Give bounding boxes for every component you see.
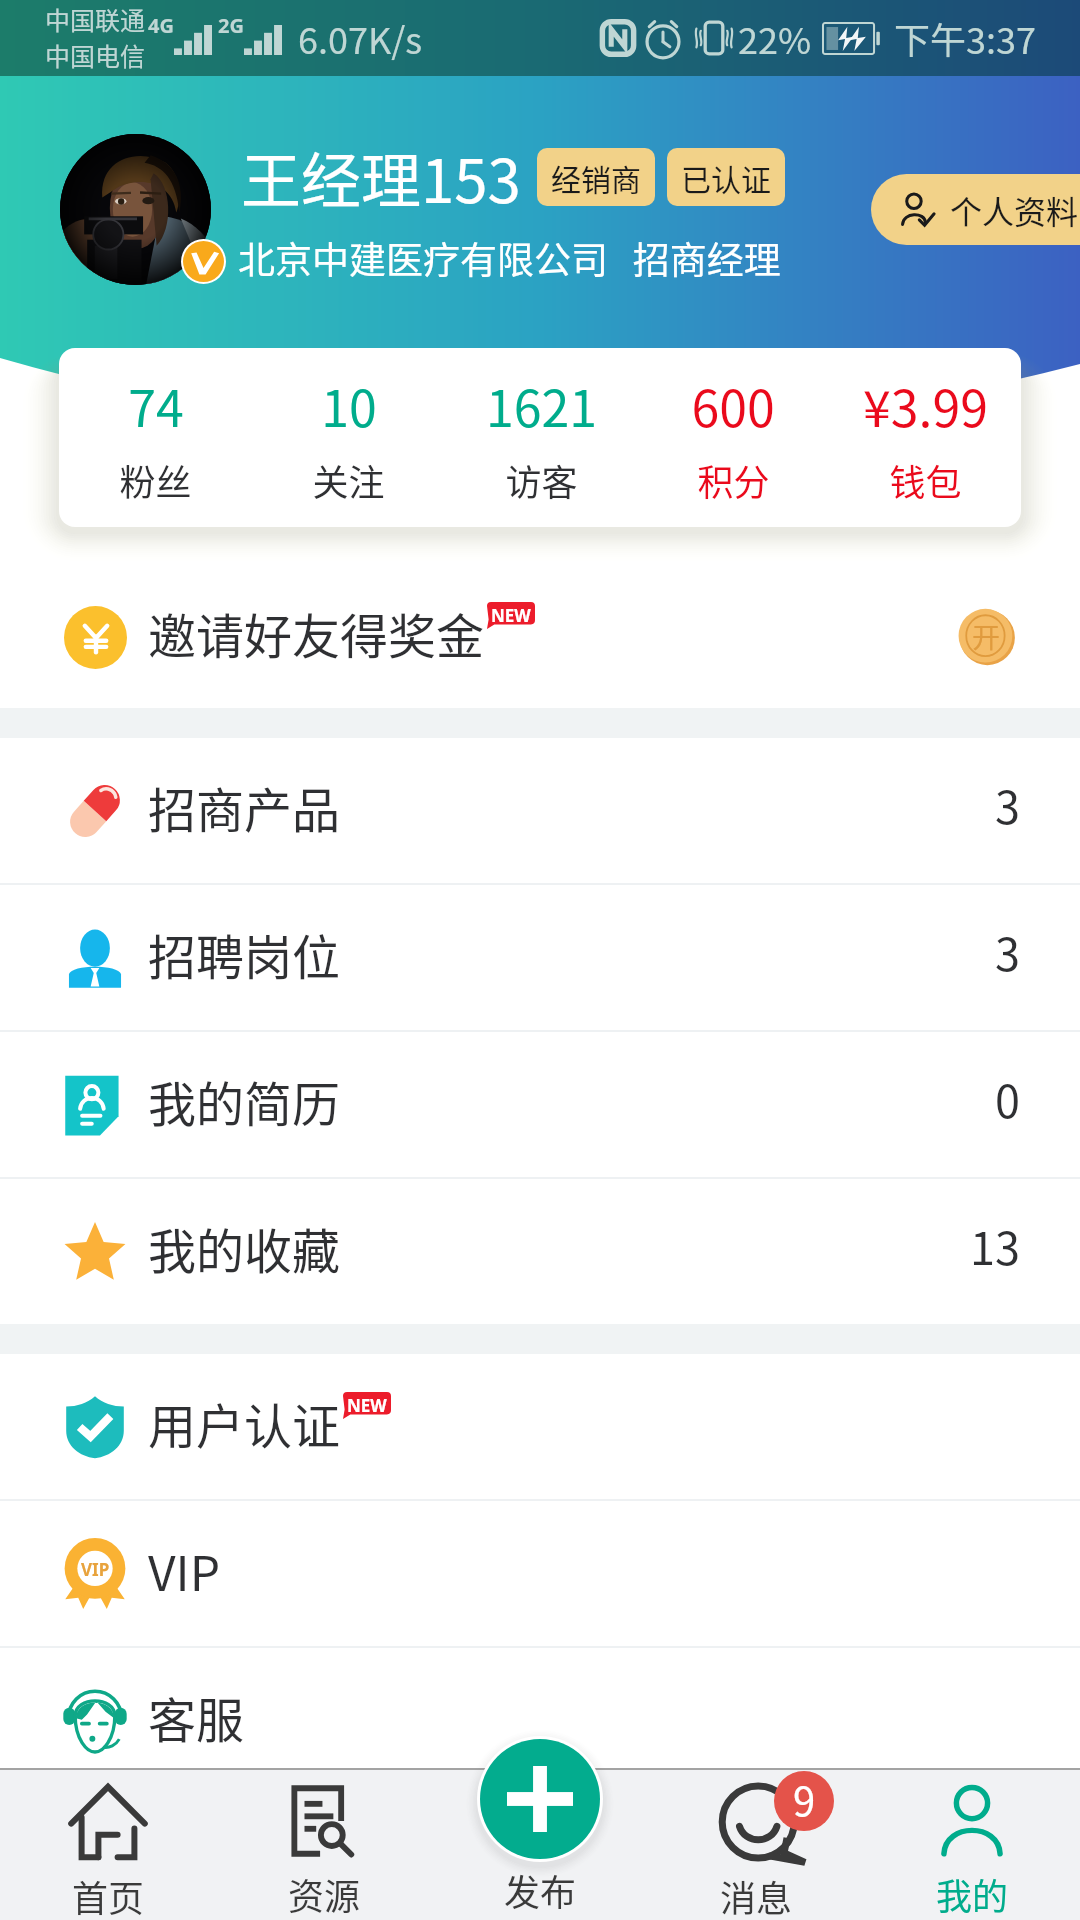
- staticText: 资源: [288, 1868, 361, 1920]
- staticText: 积分: [697, 454, 770, 506]
- staticText: 4G: [148, 12, 174, 39]
- button[interactable]: 个人资料: [871, 174, 1080, 245]
- staticText: 招聘岗位: [148, 919, 341, 989]
- staticText: 客服: [148, 1682, 245, 1752]
- staticText: 王经理153: [241, 133, 521, 220]
- staticText: 74: [128, 369, 184, 441]
- staticText: 关注: [312, 454, 385, 506]
- staticText: 访客: [505, 454, 578, 506]
- staticText: 开: [972, 616, 1001, 657]
- staticText: 我的: [936, 1868, 1009, 1920]
- button[interactable]: 客服: [0, 1648, 1080, 1793]
- staticText: 首页: [72, 1870, 145, 1920]
- staticText: 钱包: [889, 454, 962, 506]
- staticText: 3: [995, 772, 1020, 837]
- staticText: 2G: [218, 12, 244, 39]
- staticText: 已认证: [681, 156, 771, 199]
- button[interactable]: 74: [59, 369, 252, 506]
- staticText: 我的简历: [148, 1066, 341, 1136]
- button[interactable]: ¥3.99: [829, 369, 1021, 506]
- button[interactable]: 招聘岗位: [0, 885, 1080, 1030]
- button[interactable]: 发布: [432, 1768, 648, 1920]
- button[interactable]: 9: [648, 1768, 864, 1920]
- button[interactable]: VIP: [0, 1501, 1080, 1646]
- staticText: 个人资料: [950, 187, 1079, 233]
- button[interactable]: 邀请好友得奖金: [0, 565, 1080, 708]
- staticText: 9: [793, 1771, 816, 1828]
- staticText: 3: [995, 919, 1020, 984]
- button[interactable]: 10: [252, 369, 445, 506]
- staticText: NEW: [347, 1394, 387, 1417]
- staticText: 600: [691, 369, 775, 441]
- button[interactable]: 发布: [480, 1739, 600, 1859]
- staticText: ¥3.99: [863, 369, 988, 441]
- staticText: 1621: [486, 369, 597, 441]
- staticText: 中国电信: [45, 37, 146, 73]
- staticText: VIP: [148, 1535, 221, 1605]
- staticText: 消息: [720, 1870, 793, 1920]
- staticText: 我的收藏: [148, 1213, 341, 1283]
- staticText: 22%: [738, 12, 812, 64]
- button[interactable]: 招商产品: [0, 738, 1080, 883]
- button[interactable]: 资源: [216, 1768, 432, 1920]
- staticText: 粉丝: [119, 454, 192, 506]
- staticText: 招商产品: [148, 772, 341, 842]
- staticText: 经销商: [551, 156, 641, 199]
- staticText: 发布: [504, 1864, 577, 1916]
- button[interactable]: 我的简历: [0, 1032, 1080, 1177]
- button[interactable]: 用户认证: [0, 1354, 1080, 1499]
- staticText: 邀请好友得奖金: [148, 598, 485, 668]
- staticText: 6.07K/s: [298, 12, 423, 64]
- button[interactable]: 首页: [0, 1768, 216, 1920]
- staticText: 下午3:37: [894, 12, 1036, 64]
- staticText: 北京中建医疗有限公司 招商经理: [238, 231, 781, 285]
- button[interactable]: 600: [637, 369, 829, 506]
- staticText: 用户认证: [148, 1388, 341, 1458]
- staticText: 13: [970, 1213, 1020, 1278]
- staticText: NEW: [491, 604, 531, 627]
- staticText: VIP: [81, 1558, 110, 1581]
- staticText: 10: [321, 369, 377, 441]
- button[interactable]: 已认证: [667, 148, 785, 206]
- button[interactable]: 我的: [864, 1768, 1080, 1920]
- staticText: 0: [995, 1066, 1020, 1131]
- button[interactable]: 1621: [445, 369, 637, 506]
- button[interactable]: 经销商: [537, 148, 655, 206]
- button[interactable]: 我的收藏: [0, 1179, 1080, 1324]
- staticText: 中国联通: [45, 1, 146, 37]
